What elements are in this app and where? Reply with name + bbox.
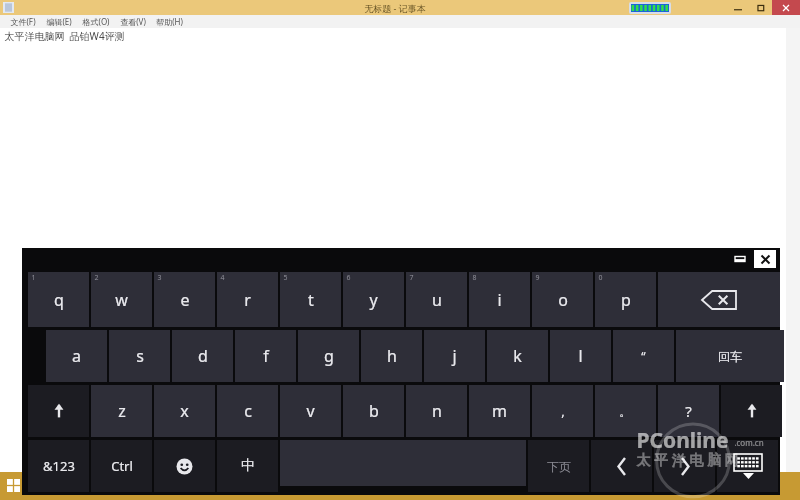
button[interactable]: 1 bbox=[28, 272, 89, 327]
staticText: g bbox=[324, 345, 334, 367]
staticText: 。 bbox=[619, 403, 632, 419]
button[interactable]: c bbox=[217, 385, 278, 437]
staticText: , bbox=[561, 402, 565, 420]
button[interactable]: &123 bbox=[28, 440, 89, 492]
button[interactable]: 回车 bbox=[676, 330, 784, 382]
button[interactable]: 编辑(E) bbox=[46, 15, 72, 28]
button[interactable]: k bbox=[487, 330, 548, 382]
staticText: p bbox=[621, 289, 631, 311]
button[interactable]: 0 bbox=[595, 272, 656, 327]
button[interactable]: Close bbox=[772, 0, 800, 15]
staticText: l bbox=[578, 345, 583, 367]
button[interactable]: d bbox=[172, 330, 233, 382]
button[interactable]: j bbox=[424, 330, 485, 382]
button[interactable]: 下页 bbox=[528, 440, 589, 492]
button[interactable]: Backspace bbox=[658, 272, 780, 327]
button[interactable]: Start bbox=[2, 474, 24, 496]
button[interactable]: 2 bbox=[91, 272, 152, 327]
staticText: ? bbox=[685, 401, 692, 421]
staticText: 下页 bbox=[547, 459, 571, 474]
button[interactable]: 5 bbox=[280, 272, 341, 327]
button[interactable]: v bbox=[280, 385, 341, 437]
staticText: a bbox=[72, 345, 81, 367]
staticText: k bbox=[513, 345, 522, 367]
staticText: c bbox=[244, 400, 252, 422]
staticText: 太 平 洋 电 脑 网 bbox=[636, 450, 739, 469]
staticText: h bbox=[387, 345, 397, 367]
staticText: q bbox=[54, 289, 64, 311]
staticText: 4 bbox=[220, 273, 225, 283]
staticText: Ctrl bbox=[111, 457, 133, 475]
staticText: 3 bbox=[157, 273, 162, 283]
staticText: .com.cn bbox=[734, 437, 764, 448]
button[interactable]: Dock keyboard bbox=[730, 250, 750, 268]
button[interactable]: 格式(O) bbox=[82, 15, 110, 28]
button[interactable]: “ bbox=[613, 330, 674, 382]
button[interactable]: Emoji bbox=[154, 440, 215, 492]
button[interactable]: f bbox=[235, 330, 296, 382]
button[interactable]: Next bbox=[654, 440, 715, 492]
button[interactable]: 帮助(H) bbox=[156, 15, 183, 28]
button[interactable]: b bbox=[343, 385, 404, 437]
button[interactable]: 文件(F) bbox=[10, 15, 36, 28]
button[interactable]: Maximize bbox=[749, 0, 772, 15]
button[interactable]: h bbox=[361, 330, 422, 382]
button[interactable]: s bbox=[109, 330, 170, 382]
staticText: 8 bbox=[472, 273, 477, 283]
staticText: 太平洋电脑网 品铂W4评测 bbox=[4, 29, 125, 43]
button[interactable]: , bbox=[532, 385, 593, 437]
button[interactable]: l bbox=[550, 330, 611, 382]
staticText: e bbox=[180, 289, 190, 311]
staticText: &123 bbox=[43, 457, 75, 475]
button[interactable]: 4 bbox=[217, 272, 278, 327]
button[interactable]: x bbox=[154, 385, 215, 437]
button[interactable]: Ctrl bbox=[91, 440, 152, 492]
staticText: 格式(O) bbox=[82, 16, 110, 27]
button[interactable]: 9 bbox=[532, 272, 593, 327]
staticText: 文件(F) bbox=[10, 16, 36, 27]
button[interactable]: n bbox=[406, 385, 467, 437]
button[interactable]: Minimize bbox=[726, 0, 749, 15]
staticText: f bbox=[263, 345, 269, 367]
staticText: o bbox=[558, 289, 568, 311]
button[interactable]: z bbox=[91, 385, 152, 437]
button[interactable]: 6 bbox=[343, 272, 404, 327]
staticText: 2 bbox=[94, 273, 99, 283]
button[interactable]: 3 bbox=[154, 272, 215, 327]
button[interactable]: Shift bbox=[721, 385, 782, 437]
button[interactable]: 查看(V) bbox=[120, 15, 146, 28]
staticText: j bbox=[452, 345, 457, 367]
staticText: u bbox=[432, 289, 442, 311]
button[interactable]: g bbox=[298, 330, 359, 382]
button[interactable]: Shift bbox=[28, 385, 89, 437]
staticText: n bbox=[432, 400, 442, 422]
staticText: m bbox=[492, 400, 507, 422]
button[interactable]: Notepad icon bbox=[3, 2, 14, 13]
button[interactable]: Close keyboard bbox=[754, 250, 776, 268]
staticText: w bbox=[115, 289, 128, 311]
staticText: 6 bbox=[346, 273, 351, 283]
staticText: 7 bbox=[409, 273, 414, 283]
staticText: 0 bbox=[598, 273, 603, 283]
button[interactable]: Previous bbox=[591, 440, 652, 492]
button[interactable]: 中 bbox=[217, 440, 278, 492]
staticText: 查看(V) bbox=[120, 16, 146, 27]
staticText: v bbox=[306, 400, 315, 422]
staticText: z bbox=[118, 400, 126, 422]
staticText: d bbox=[198, 345, 208, 367]
button[interactable]: Keyboard layout bbox=[717, 440, 778, 492]
button[interactable]: m bbox=[469, 385, 530, 437]
staticText: 1 bbox=[31, 273, 36, 283]
staticText: 无标题 - 记事本 bbox=[364, 2, 426, 14]
staticText: 中 bbox=[241, 457, 255, 475]
staticText: 回车 bbox=[718, 349, 742, 364]
button[interactable]: 8 bbox=[469, 272, 530, 327]
staticText: t bbox=[308, 289, 314, 311]
staticText: 5 bbox=[283, 273, 288, 283]
button[interactable]: ? bbox=[658, 385, 719, 437]
button[interactable]: 。 bbox=[595, 385, 656, 437]
button[interactable]: Status gadget bbox=[631, 4, 669, 12]
button[interactable]: 7 bbox=[406, 272, 467, 327]
button[interactable]: a bbox=[46, 330, 107, 382]
